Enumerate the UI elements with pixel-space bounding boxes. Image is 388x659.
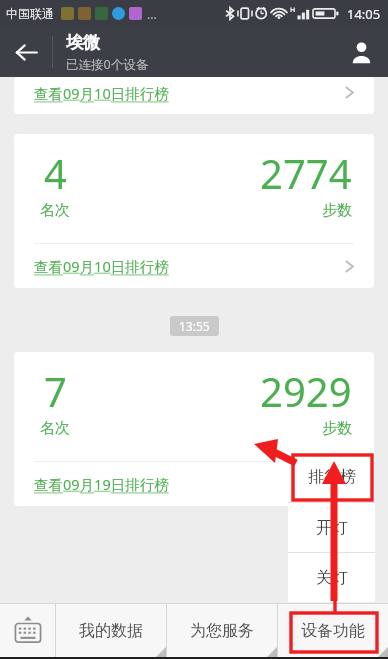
button[interactable]: 我的数据: [56, 604, 166, 657]
button[interactable]: 关灯: [288, 553, 375, 602]
staticText: 名次: [40, 419, 70, 438]
staticText: 步数: [322, 419, 352, 438]
staticText: 2929: [260, 364, 352, 418]
staticText: 设备功能: [301, 621, 365, 641]
button[interactable]: 查看09月10日排行榜: [14, 77, 374, 108]
button[interactable]: 查看09月19日排行榜: [14, 462, 374, 506]
staticText: 埃微: [66, 32, 100, 53]
staticText: 13:55: [179, 318, 210, 334]
staticText: 开灯: [316, 518, 348, 538]
staticText: 7: [44, 364, 67, 418]
staticText: 4: [44, 146, 67, 200]
staticText: 排行榜: [308, 467, 356, 487]
button[interactable]: 查看09月10日排行榜: [14, 244, 374, 288]
button[interactable]: 排行榜: [288, 452, 375, 502]
button[interactable]: Keyboard: [0, 604, 55, 657]
button[interactable]: Profile: [334, 27, 388, 77]
staticText: 步数: [322, 201, 352, 220]
staticText: 查看09月10日排行榜: [34, 83, 169, 103]
staticText: 中国联通: [6, 6, 54, 21]
button[interactable]: 设备功能: [278, 604, 388, 657]
staticText: 关灯: [316, 568, 348, 588]
staticText: 查看09月19日排行榜: [34, 474, 169, 494]
button[interactable]: 为您服务: [167, 604, 277, 657]
staticText: 2774: [260, 146, 352, 200]
button[interactable]: Back: [0, 27, 52, 77]
button[interactable]: 开灯: [288, 503, 375, 552]
staticText: ...: [147, 6, 157, 22]
staticText: 查看09月10日排行榜: [34, 256, 169, 276]
staticText: 我的数据: [79, 621, 143, 641]
staticText: 已连接0个设备: [66, 56, 149, 73]
staticText: 名次: [40, 201, 70, 220]
staticText: 14:05: [347, 5, 381, 23]
staticText: 为您服务: [190, 621, 254, 641]
